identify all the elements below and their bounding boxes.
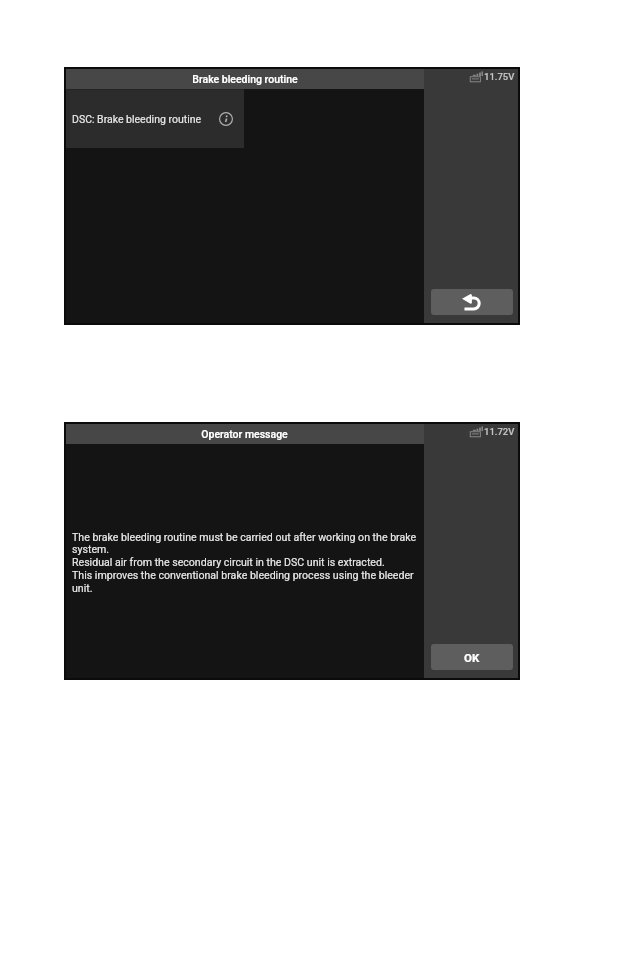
button[interactable]: Back: [431, 289, 513, 315]
staticText: Brake bleeding routine: [192, 73, 298, 85]
staticText: OK: [464, 651, 480, 664]
staticText: The brake bleeding routine must be carri…: [72, 531, 417, 594]
button[interactable]: OK: [431, 644, 513, 670]
button[interactable]: DSC: Brake bleeding routine: [65, 89, 244, 148]
staticText: 11.72V: [484, 426, 515, 437]
staticText: DSC: Brake bleeding routine: [72, 113, 202, 125]
staticText: 11.75V: [484, 71, 515, 82]
staticText: Operator message: [201, 428, 288, 440]
